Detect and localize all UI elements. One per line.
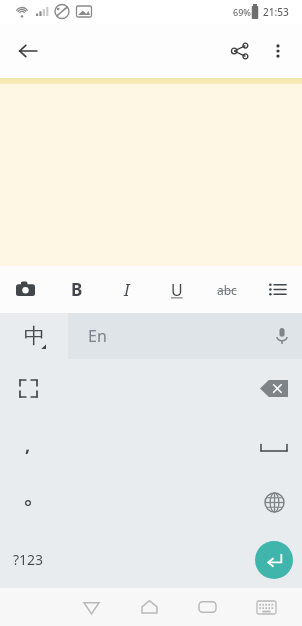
button[interactable]: Symbols (0, 531, 56, 588)
button[interactable]: Insert image (0, 266, 51, 313)
button[interactable]: Voice input (262, 313, 302, 359)
button[interactable]: Comma (0, 417, 56, 474)
button[interactable]: Change input method (246, 474, 302, 531)
button[interactable]: Strikethrough (202, 266, 252, 313)
staticText: abc (217, 282, 237, 298)
staticText: I (124, 278, 130, 301)
button[interactable]: Bold (51, 266, 102, 313)
button[interactable]: Backspace (246, 359, 302, 417)
staticText: , (25, 433, 31, 458)
staticText: En (88, 325, 107, 347)
button[interactable]: Degree (0, 474, 56, 531)
staticText: 69% (233, 6, 251, 18)
button[interactable]: More options (260, 33, 296, 69)
button[interactable]: Recents (178, 588, 237, 626)
button[interactable]: Share (222, 33, 258, 69)
staticText: U (171, 279, 183, 301)
staticText: B (71, 278, 83, 301)
button[interactable]: Enter (246, 531, 302, 588)
staticText: ?123 (13, 550, 44, 569)
button[interactable]: Back (62, 588, 120, 626)
button[interactable]: Home (120, 588, 178, 626)
button[interactable]: Expand keyboard (0, 359, 56, 417)
button[interactable]: Underline (152, 266, 202, 313)
button[interactable]: Italic (102, 266, 152, 313)
button[interactable]: Bulleted list (252, 266, 302, 313)
staticText: 21:53 (263, 5, 289, 19)
staticText: 中 (24, 323, 45, 349)
button[interactable]: Hide keyboard (237, 588, 296, 626)
button[interactable]: Back (10, 33, 46, 69)
button[interactable]: Switch language (0, 313, 68, 359)
button[interactable]: En (68, 313, 262, 359)
button[interactable]: Space (246, 417, 302, 474)
